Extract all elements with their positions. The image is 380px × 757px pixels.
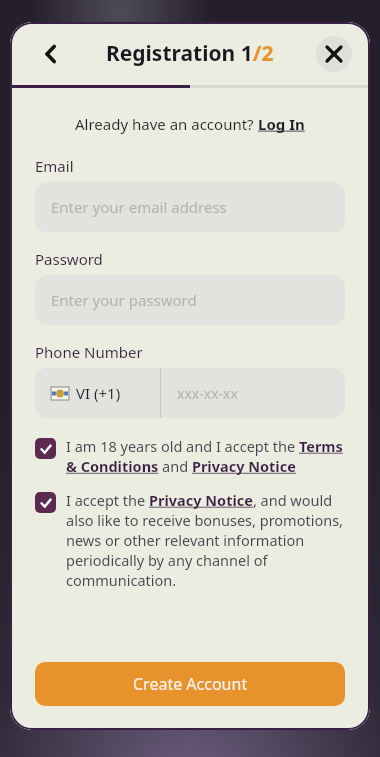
staticText: Log In — [258, 114, 305, 134]
staticText: I am 18 years old and I accept the Terms… — [66, 436, 345, 476]
button[interactable]: Close — [316, 36, 352, 72]
button[interactable]: VI (+1) — [35, 368, 160, 418]
button[interactable]: Enter your email address — [35, 182, 345, 232]
staticText: Create Account — [133, 673, 248, 695]
button[interactable]: Create Account — [35, 662, 345, 706]
button[interactable]: Log In — [258, 114, 305, 134]
staticText: Enter your password — [51, 290, 197, 310]
staticText: Already have an account? — [75, 114, 258, 134]
staticText: Enter your email address — [51, 197, 227, 217]
button[interactable]: I am 18 years old and I accept the Terms… — [35, 436, 345, 476]
button[interactable]: I accept the Privacy Notice, and would a… — [35, 490, 345, 590]
staticText: Phone Number — [35, 342, 143, 362]
button[interactable]: xxx-xx-xx — [161, 368, 345, 418]
staticText: Registration 1/2 — [106, 39, 274, 68]
staticText: Password — [35, 249, 103, 269]
button[interactable]: Enter your password — [35, 275, 345, 325]
staticText: Email — [35, 156, 74, 176]
staticText: xxx-xx-xx — [177, 384, 238, 403]
staticText: I accept the Privacy Notice, and would a… — [66, 490, 345, 590]
staticText: VI (+1) — [76, 383, 121, 403]
button[interactable]: Back — [34, 37, 68, 71]
